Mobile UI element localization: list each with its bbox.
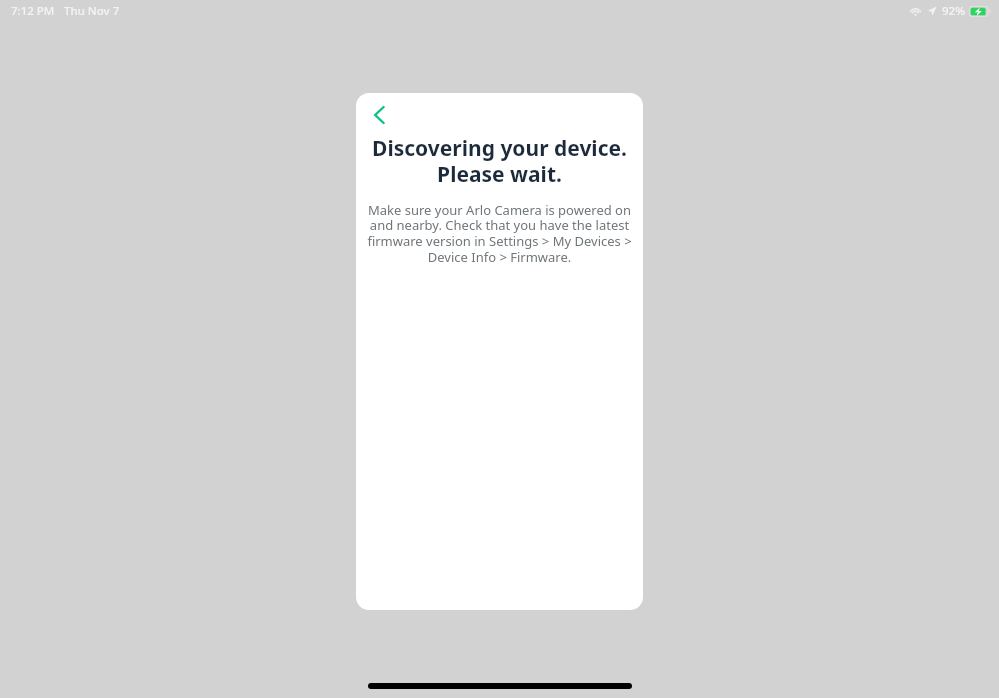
button[interactable]: Back bbox=[364, 99, 396, 131]
staticText: 92% bbox=[942, 3, 965, 19]
staticText: Make sure your Arlo Camera is powered on… bbox=[366, 201, 633, 266]
staticText: Thu Nov 7 bbox=[64, 3, 120, 19]
staticText: Discovering your device. Please wait. bbox=[368, 134, 631, 188]
staticText: 7:12 PM bbox=[11, 3, 55, 19]
